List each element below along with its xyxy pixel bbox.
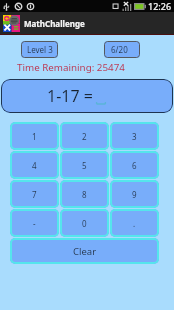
other: Notification [26,2,35,11]
staticText: 12:26 [148,0,172,12]
button[interactable]: 0 [60,209,109,237]
button[interactable]: . [110,209,159,237]
button[interactable]: 7 [10,180,59,208]
button[interactable]: 9 [110,180,159,208]
staticText: 7 [32,189,37,200]
staticText: 8 [82,189,87,200]
button[interactable]: 1 [10,122,59,150]
button[interactable]: - [10,209,59,237]
button[interactable]: 6 [110,151,159,179]
staticText: 2 [82,131,87,142]
staticText: Clear [73,245,97,258]
button[interactable]: 2 [60,122,109,150]
staticText: 6/20 [111,44,128,55]
other: Sync [14,2,23,11]
button[interactable]: 6/20 [104,41,140,58]
staticText: 9 [132,189,137,200]
button[interactable]: Level 3 [21,41,58,58]
button[interactable]: 3 [110,122,159,150]
staticText: 6 [132,160,137,171]
staticText: - [33,218,36,229]
button[interactable]: 1-17 = [1,79,173,113]
staticText: Time Remaining: 25474 [17,61,125,74]
button[interactable]: 4 [10,151,59,179]
button[interactable]: Clear [10,238,159,264]
other: USB connected [2,2,11,11]
staticText: Level 3 [27,44,53,55]
staticText: 0 [82,218,87,229]
staticText: 5 [82,160,87,171]
staticText: 3 [132,131,137,142]
button[interactable]: 8 [60,180,109,208]
staticText: 1 [32,131,37,142]
staticText: 4 [32,160,37,171]
staticText: MathChallenge [24,18,85,29]
staticText: . [133,218,136,229]
button[interactable]: 5 [60,151,109,179]
staticText: 1-17 = [47,85,93,107]
